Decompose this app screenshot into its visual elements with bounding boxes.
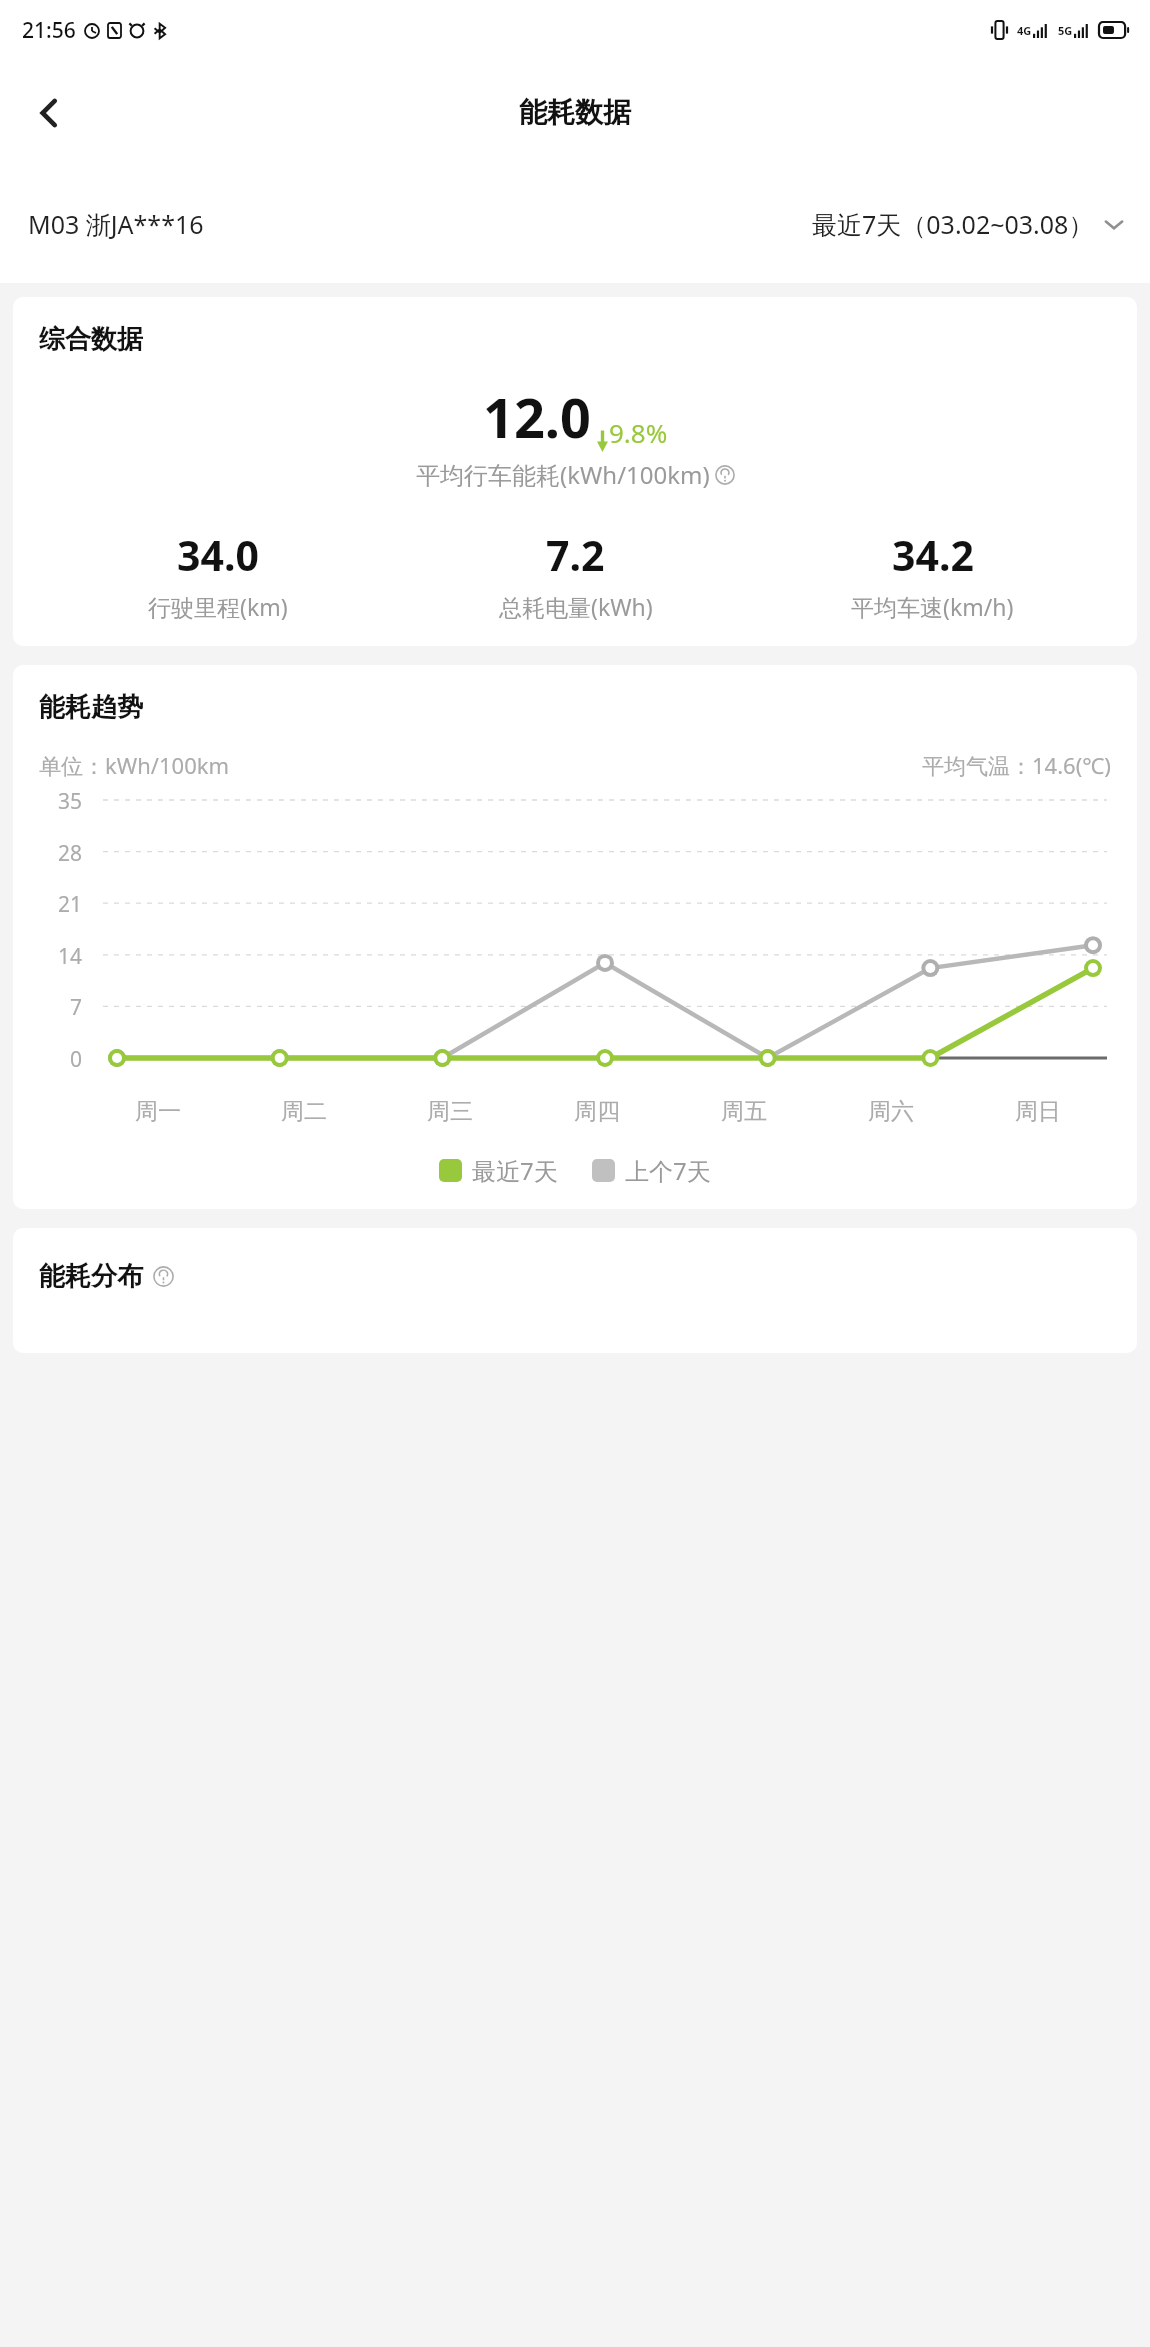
staticText: 周五 <box>721 1097 767 1126</box>
button[interactable]: 最近7天（03.02~03.08） <box>812 207 1126 241</box>
button[interactable]: 34.0 <box>39 527 397 622</box>
staticText: 7 <box>70 993 83 1022</box>
button[interactable]: 7.2 <box>397 527 754 622</box>
button[interactable]: 上个7天 <box>592 1154 711 1187</box>
staticText: 34.0 <box>177 527 259 583</box>
staticText: 34.2 <box>892 527 974 583</box>
staticText: 9.8% <box>609 415 668 450</box>
staticText: 能耗趋势 <box>39 691 143 724</box>
staticText: 周三 <box>427 1097 473 1126</box>
button[interactable]: 能耗分布 <box>39 1260 174 1293</box>
button[interactable]: 34.2 <box>754 527 1111 622</box>
staticText: 最近7天 <box>472 1154 558 1187</box>
staticText: 总耗电量(kWh) <box>499 591 653 622</box>
staticText: 21 <box>58 890 83 919</box>
staticText: 12.0 <box>483 380 591 454</box>
staticText: 行驶里程(km) <box>148 591 288 622</box>
staticText: 上个7天 <box>625 1154 711 1187</box>
staticText: 7.2 <box>546 527 605 583</box>
staticText: 周日 <box>1015 1097 1061 1126</box>
button[interactable]: 最近7天 <box>439 1154 558 1187</box>
staticText: 35 <box>58 787 83 816</box>
staticText: 单位：kWh/100km <box>39 750 230 780</box>
staticText: 平均行车能耗(kWh/100km) <box>416 458 710 491</box>
staticText: 综合数据 <box>39 323 143 356</box>
staticText: 平均气温：14.6(℃) <box>922 750 1111 780</box>
staticText: 28 <box>58 839 83 868</box>
staticText: 周四 <box>574 1097 620 1126</box>
staticText: 周一 <box>135 1097 181 1126</box>
staticText: 能耗数据 <box>519 95 631 130</box>
button[interactable]: Back <box>16 80 82 146</box>
button[interactable]: M03 浙JA***16 <box>28 207 204 241</box>
staticText: 4G <box>1017 23 1032 38</box>
staticText: 平均车速(km/h) <box>851 591 1014 622</box>
staticText: 14 <box>58 942 83 971</box>
staticText: 周二 <box>281 1097 327 1126</box>
staticText: 能耗分布 <box>39 1260 143 1293</box>
staticText: 0 <box>70 1045 83 1074</box>
staticText: 周六 <box>868 1097 914 1126</box>
staticText: 最近7天（03.02~03.08） <box>812 207 1094 241</box>
staticText: 21:56 <box>22 16 76 45</box>
staticText: 5G <box>1058 23 1073 38</box>
